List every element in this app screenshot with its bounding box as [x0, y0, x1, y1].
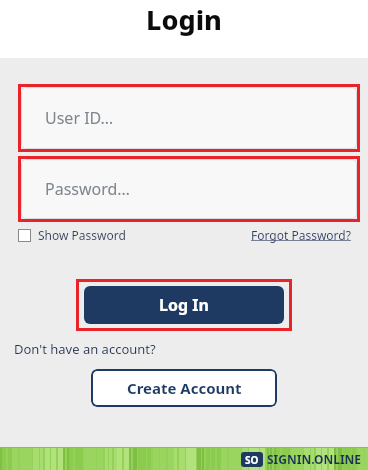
button[interactable]: Forgot Password? [251, 227, 351, 243]
button[interactable]: Create Account [91, 369, 277, 407]
staticText: SIGNIN.ONLINE [267, 451, 362, 467]
button[interactable]: Password… [21, 159, 357, 219]
button[interactable]: Log In [84, 286, 284, 324]
staticText: User ID… [45, 107, 114, 129]
button[interactable]: Show Password [18, 227, 126, 243]
staticText: Don't have an account? [14, 340, 156, 358]
staticText: Password… [45, 178, 131, 200]
staticText: Login [0, 1, 368, 38]
staticText: Show Password [38, 227, 126, 243]
staticText: Create Account [127, 378, 242, 398]
button[interactable]: User ID… [21, 87, 357, 149]
staticText: SO [245, 453, 259, 467]
button[interactable]: SIGNIN.ONLINE [241, 451, 362, 467]
staticText: Log In [159, 294, 209, 316]
